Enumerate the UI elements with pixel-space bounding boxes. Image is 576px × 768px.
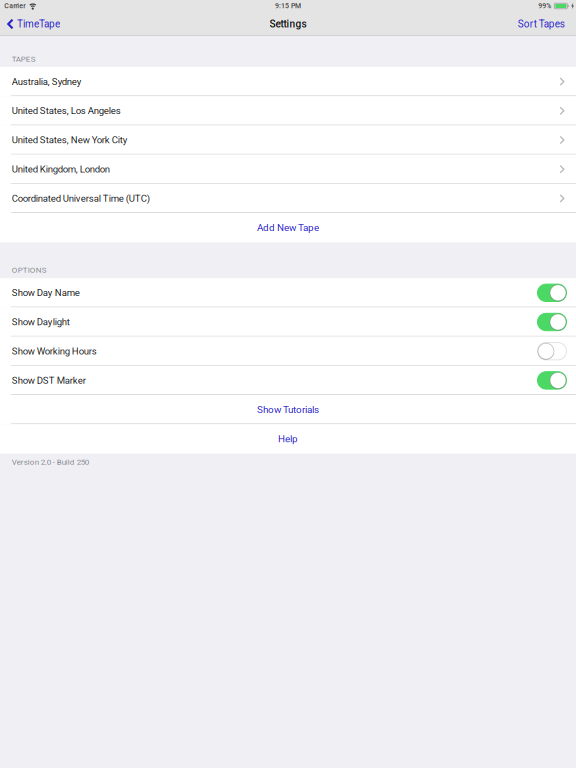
staticText: TimeTape (17, 18, 60, 30)
staticText: Sort Tapes (518, 18, 565, 30)
button[interactable]: TimeTape (0, 12, 68, 36)
button[interactable]: United Kingdom, London (0, 155, 576, 184)
button[interactable]: Help (0, 424, 576, 453)
button[interactable]: United States, New York City (0, 125, 576, 155)
button[interactable]: Show Day Name (0, 278, 576, 307)
staticText: Carrier (4, 2, 25, 10)
staticText: Version 2.0 - Build 250 (12, 457, 89, 467)
staticText: United States, New York City (12, 134, 128, 146)
button[interactable]: Add New Tape (0, 213, 576, 242)
staticText: Show Working Hours (12, 346, 97, 357)
staticText: Help (278, 433, 298, 445)
staticText: 9:15 PM (275, 2, 301, 10)
button[interactable]: Sort Tapes (510, 12, 576, 36)
staticText: United States, Los Angeles (12, 105, 121, 116)
staticText: OPTIONS (12, 265, 47, 275)
staticText: Show DST Marker (12, 375, 86, 386)
button[interactable]: United States, Los Angeles (0, 96, 576, 125)
staticText: Show Tutorials (257, 404, 319, 415)
button[interactable]: Australia, Sydney (0, 67, 576, 96)
staticText: Show Day Name (12, 287, 80, 298)
staticText: Australia, Sydney (12, 76, 82, 87)
staticText: TAPES (12, 54, 36, 64)
button[interactable]: Show Tutorials (0, 395, 576, 424)
staticText: Add New Tape (257, 222, 319, 233)
staticText: Show Daylight (12, 316, 70, 328)
staticText: Coordinated Universal Time (UTC) (12, 193, 150, 204)
button[interactable]: Show Daylight (0, 307, 576, 337)
button[interactable]: Show Working Hours (0, 337, 576, 366)
staticText: Settings (269, 18, 306, 30)
button[interactable]: Show DST Marker (0, 366, 576, 395)
button[interactable]: Coordinated Universal Time (UTC) (0, 184, 576, 213)
staticText: 99% (538, 2, 551, 10)
staticText: United Kingdom, London (12, 164, 110, 175)
